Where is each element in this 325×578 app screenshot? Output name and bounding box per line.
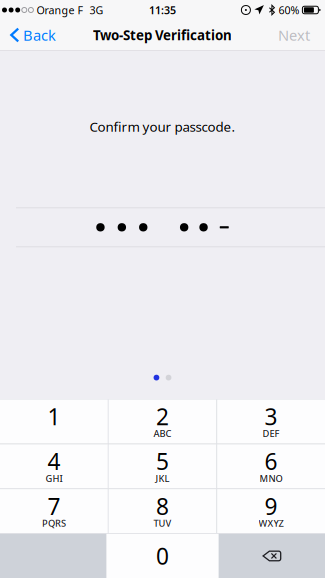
staticText: 60% [278,3,299,17]
button[interactable]: 3 [217,399,325,444]
button[interactable]: Next [278,19,325,51]
staticText: TUV [153,517,171,529]
button[interactable]: 6 [217,444,325,488]
staticText: 3G [89,3,103,17]
staticText: 3 [265,401,278,431]
button[interactable]: Delete [219,534,325,578]
staticText: 7 [47,491,60,521]
button[interactable]: 7 [0,489,108,533]
button[interactable]: 8 [109,489,216,533]
staticText: Orange F [36,3,83,17]
staticText: DEF [263,427,280,440]
staticText: GHI [45,472,62,484]
staticText: 9 [265,491,278,521]
staticText: Next [278,25,310,45]
staticText: ABC [153,427,171,440]
button[interactable]: Back [0,19,56,51]
staticText: 0 [156,541,169,571]
staticText: PQRS [42,517,66,529]
staticText: 11:35 [149,3,176,17]
staticText: 8 [156,491,169,521]
staticText: 6 [265,446,278,476]
staticText: 4 [47,446,60,476]
button[interactable]: 1 [0,399,108,444]
staticText: WXYZ [259,517,284,529]
staticText: Two-Step Verification [93,26,232,44]
button[interactable]: 9 [217,489,325,533]
button[interactable]: 0 [106,534,219,578]
staticText: 2 [156,401,169,431]
staticText: JKL [155,472,169,484]
staticText: Confirm your passcode. [89,118,235,135]
staticText: Back [23,25,56,45]
button[interactable]: 4 [0,444,108,488]
button[interactable]: 5 [109,444,216,488]
staticText: 1 [47,401,60,431]
staticText: MNO [260,472,283,484]
button[interactable]: 2 [109,399,216,444]
staticText: 5 [156,446,169,476]
